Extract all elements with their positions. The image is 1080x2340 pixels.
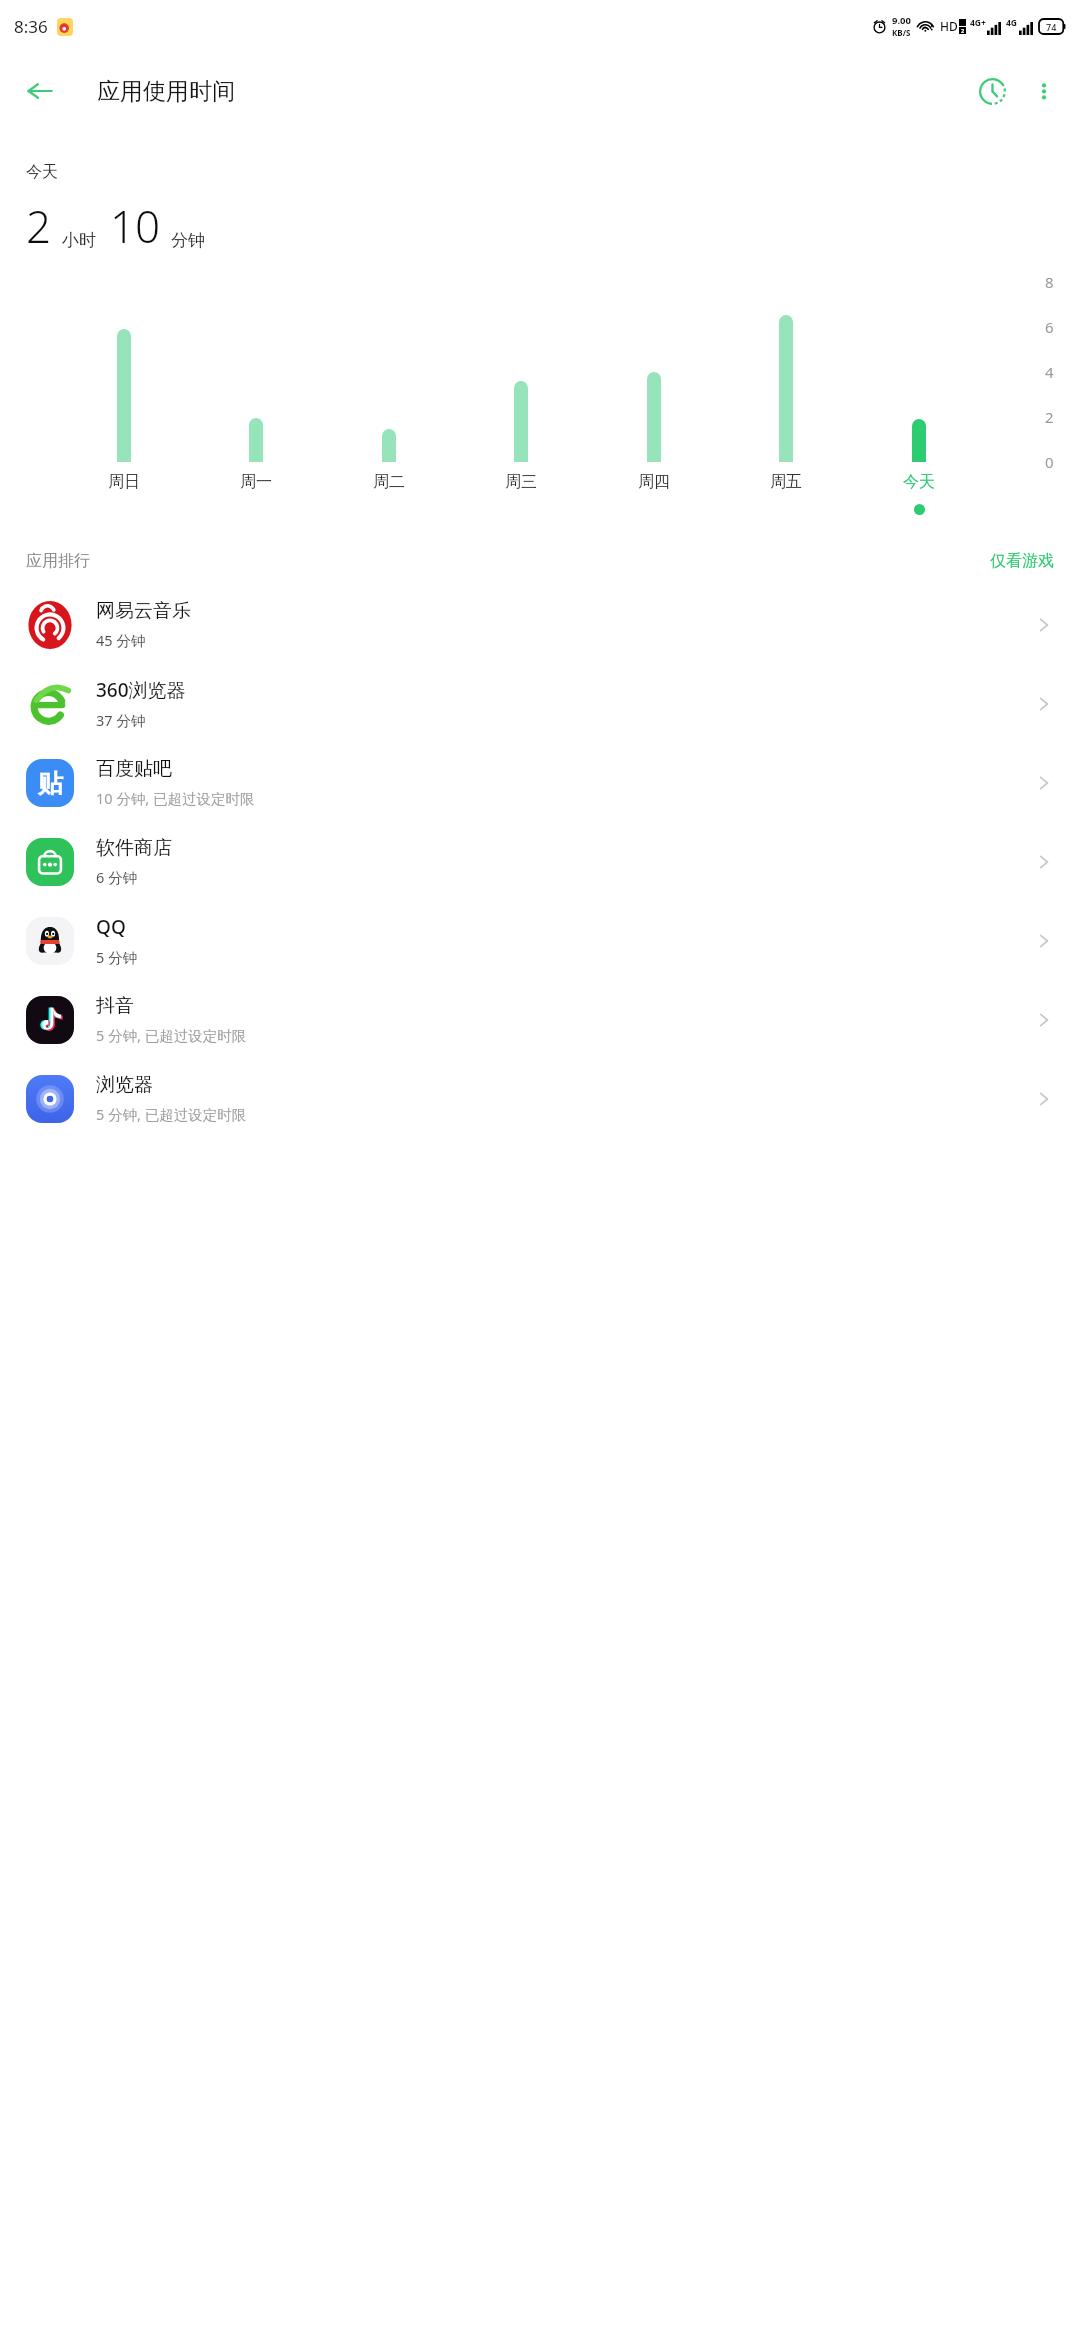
staticText: 0: [1045, 452, 1054, 472]
staticText: 2: [961, 27, 965, 34]
button[interactable]: 周四: [638, 472, 670, 492]
button[interactable]: 今天: [903, 472, 935, 492]
staticText: 6: [1045, 317, 1054, 337]
staticText: 9.00: [892, 14, 911, 27]
button[interactable]: More options: [1018, 65, 1070, 117]
staticText: 小时: [62, 230, 96, 251]
staticText: 4G+: [970, 17, 986, 29]
button[interactable]: 网易云音乐: [0, 585, 1080, 664]
button[interactable]: 360浏览器: [0, 664, 1080, 743]
staticText: 2: [26, 196, 52, 256]
button[interactable]: 软件商店: [0, 822, 1080, 901]
staticText: 仅看游戏: [990, 551, 1054, 571]
staticText: 8: [1045, 272, 1054, 292]
staticText: 5 分钟, 已超过设定时限: [96, 1104, 247, 1124]
staticText: 74: [1046, 21, 1057, 33]
staticText: 应用使用时间: [97, 77, 235, 106]
button[interactable]: 贴: [0, 743, 1080, 822]
staticText: HD: [940, 18, 958, 34]
button[interactable]: Usage timer: [966, 65, 1018, 117]
button[interactable]: Back: [14, 65, 66, 117]
button[interactable]: QQ: [0, 901, 1080, 980]
button[interactable]: 周五: [770, 472, 802, 492]
staticText: 5 分钟, 已超过设定时限: [96, 1025, 247, 1045]
staticText: 软件商店: [96, 836, 172, 860]
staticText: 应用排行: [26, 551, 90, 571]
staticText: 4: [1045, 362, 1054, 382]
staticText: 4G: [1006, 17, 1018, 29]
staticText: 网易云音乐: [96, 599, 191, 623]
staticText: 45 分钟: [96, 630, 146, 650]
staticText: 5 分钟: [96, 947, 138, 967]
staticText: 百度贴吧: [96, 757, 172, 781]
button[interactable]: 周二: [373, 472, 405, 492]
button[interactable]: 仅看游戏: [990, 551, 1054, 571]
staticText: 10: [110, 196, 161, 256]
staticText: 分钟: [171, 230, 205, 251]
staticText: 浏览器: [96, 1073, 153, 1097]
staticText: 8:36: [14, 15, 48, 38]
button[interactable]: 浏览器: [0, 1059, 1080, 1138]
staticText: 6 分钟: [96, 867, 138, 887]
staticText: 360浏览器: [96, 677, 186, 703]
staticText: 今天: [26, 162, 58, 182]
button[interactable]: 周日: [108, 472, 140, 492]
staticText: KB/S: [892, 27, 911, 38]
button[interactable]: 周一: [240, 472, 272, 492]
staticText: 37 分钟: [96, 710, 146, 730]
staticText: 贴: [38, 768, 63, 799]
staticText: QQ: [96, 914, 126, 940]
button[interactable]: 抖音: [0, 980, 1080, 1059]
staticText: 2: [1045, 407, 1054, 427]
staticText: 10 分钟, 已超过设定时限: [96, 788, 255, 808]
staticText: 抖音: [96, 994, 134, 1018]
button[interactable]: 周三: [505, 472, 537, 492]
